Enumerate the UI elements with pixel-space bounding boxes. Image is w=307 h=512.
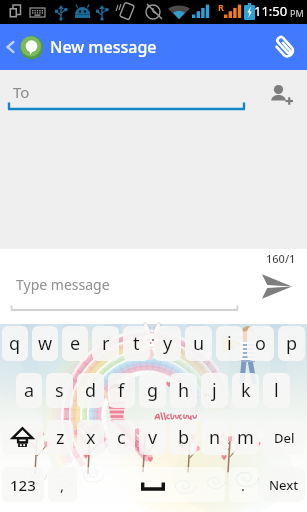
button[interactable]: y bbox=[154, 326, 181, 361]
staticText: l bbox=[274, 378, 279, 403]
staticText: 123 bbox=[10, 475, 36, 495]
staticText: i bbox=[227, 331, 232, 356]
staticText: c bbox=[117, 425, 126, 450]
button[interactable]: Space bbox=[81, 467, 225, 502]
staticText: w bbox=[38, 331, 53, 356]
button[interactable]: l bbox=[263, 373, 290, 408]
button[interactable]: w bbox=[32, 326, 58, 361]
staticText: e bbox=[70, 331, 81, 356]
staticText: z bbox=[56, 425, 65, 450]
staticText: a bbox=[24, 378, 35, 403]
staticText: R bbox=[218, 1, 224, 13]
staticText: h bbox=[178, 378, 190, 403]
button[interactable]: n bbox=[201, 420, 228, 455]
button[interactable]: Shift bbox=[2, 420, 43, 455]
staticText: , bbox=[60, 475, 65, 495]
button[interactable]: m bbox=[232, 420, 259, 455]
button[interactable]: e bbox=[62, 326, 88, 361]
button[interactable]: Send bbox=[245, 249, 307, 324]
button[interactable]: p bbox=[278, 326, 305, 361]
staticText: 160/1 bbox=[266, 251, 296, 266]
button[interactable]: Attach file bbox=[261, 24, 307, 70]
button[interactable]: b bbox=[170, 420, 197, 455]
staticText: New message bbox=[50, 36, 157, 58]
button[interactable]: i bbox=[216, 326, 243, 361]
staticText: f bbox=[118, 378, 125, 403]
staticText: x bbox=[86, 425, 96, 450]
staticText: b bbox=[178, 425, 190, 450]
other: Back bbox=[3, 38, 17, 56]
button[interactable]: c bbox=[108, 420, 135, 455]
staticText: d bbox=[85, 378, 97, 403]
staticText: g bbox=[147, 378, 159, 403]
staticText: q bbox=[9, 331, 21, 356]
staticText: Type message bbox=[16, 275, 110, 294]
button[interactable]: q bbox=[2, 326, 28, 361]
staticText: Del bbox=[274, 429, 295, 447]
staticText: n bbox=[209, 425, 221, 450]
staticText: y bbox=[163, 331, 173, 356]
staticText: p bbox=[286, 331, 298, 356]
staticText: o bbox=[255, 331, 266, 356]
button[interactable]: 123 bbox=[2, 467, 44, 502]
staticText: To bbox=[13, 82, 30, 102]
staticText: 11:50 bbox=[254, 2, 288, 20]
button[interactable]: Next bbox=[262, 467, 305, 502]
button[interactable]: a bbox=[16, 373, 42, 408]
button[interactable]: t bbox=[123, 326, 150, 361]
staticText: Next bbox=[269, 476, 299, 494]
button[interactable]: k bbox=[232, 373, 259, 408]
button[interactable]: s bbox=[46, 373, 73, 408]
button[interactable]: x bbox=[77, 420, 104, 455]
button[interactable]: o bbox=[247, 326, 274, 361]
button[interactable]: j bbox=[201, 373, 228, 408]
button[interactable]: r bbox=[92, 326, 119, 361]
button[interactable]: , bbox=[48, 467, 77, 502]
button[interactable]: Add recipient bbox=[253, 70, 307, 118]
staticText: r bbox=[102, 331, 110, 356]
button[interactable]: . bbox=[229, 467, 258, 502]
staticText: t bbox=[133, 331, 140, 356]
button[interactable]: Del bbox=[263, 420, 305, 455]
button[interactable]: d bbox=[77, 373, 104, 408]
button[interactable]: h bbox=[170, 373, 197, 408]
staticText: v bbox=[148, 425, 158, 450]
button[interactable]: v bbox=[139, 420, 166, 455]
staticText: j bbox=[212, 378, 217, 403]
staticText: u bbox=[193, 331, 205, 356]
button[interactable]: Back bbox=[0, 24, 157, 70]
staticText: PM bbox=[290, 7, 304, 19]
button[interactable]: z bbox=[47, 420, 73, 455]
button[interactable]: f bbox=[108, 373, 135, 408]
staticText: m bbox=[237, 425, 254, 450]
button[interactable]: g bbox=[139, 373, 166, 408]
staticText: . bbox=[241, 475, 246, 495]
staticText: k bbox=[241, 378, 251, 403]
button[interactable]: u bbox=[185, 326, 212, 361]
staticText: s bbox=[55, 378, 64, 403]
